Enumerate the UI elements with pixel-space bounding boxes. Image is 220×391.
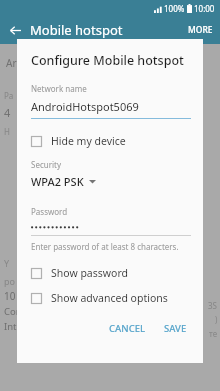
staticText: 100% <box>164 3 185 14</box>
button[interactable]: MORE <box>181 19 220 41</box>
staticText: CANCEL <box>109 322 146 335</box>
button[interactable]: WPA2 PSK <box>31 174 96 189</box>
staticText: Mobile hotspot <box>30 21 123 39</box>
staticText: Ar <box>6 56 17 70</box>
staticText: 10:00 <box>194 3 215 14</box>
staticText: Security <box>31 159 62 170</box>
staticText: po <box>4 275 15 287</box>
staticText: Show advanced options <box>51 291 168 305</box>
staticText: 4 <box>4 105 11 120</box>
staticText: AndroidHotspot5069 <box>31 99 139 114</box>
staticText: 10 <box>4 289 16 303</box>
staticText: SAVE <box>164 322 187 335</box>
button[interactable]: Back <box>4 19 26 41</box>
staticText: Hide my device <box>51 134 126 148</box>
staticText: Connected devices will have access to th… <box>4 305 189 318</box>
staticText: H <box>4 126 10 137</box>
staticText: Network name <box>31 83 87 94</box>
staticText: те <box>209 328 218 339</box>
button[interactable]: SAVE <box>158 317 193 340</box>
staticText: Internet via your mobile network. <box>4 320 154 333</box>
staticText: Y <box>4 257 10 269</box>
staticText: Password <box>31 206 68 217</box>
staticText: ) <box>215 314 218 325</box>
staticText: MORE <box>188 24 213 36</box>
staticText: Configure Mobile hotspot <box>31 52 184 69</box>
button[interactable]: Hide my device <box>17 132 203 150</box>
button[interactable]: Show password <box>17 264 203 282</box>
staticText: Pa <box>4 90 14 101</box>
staticText: Enter password of at least 8 characters. <box>31 241 179 252</box>
button[interactable]: Show advanced options <box>17 289 203 307</box>
button[interactable]: CANCEL <box>103 317 152 340</box>
staticText: ЗS <box>208 300 218 311</box>
staticText: Show password <box>51 266 128 280</box>
staticText: WPA2 PSK <box>31 174 84 189</box>
